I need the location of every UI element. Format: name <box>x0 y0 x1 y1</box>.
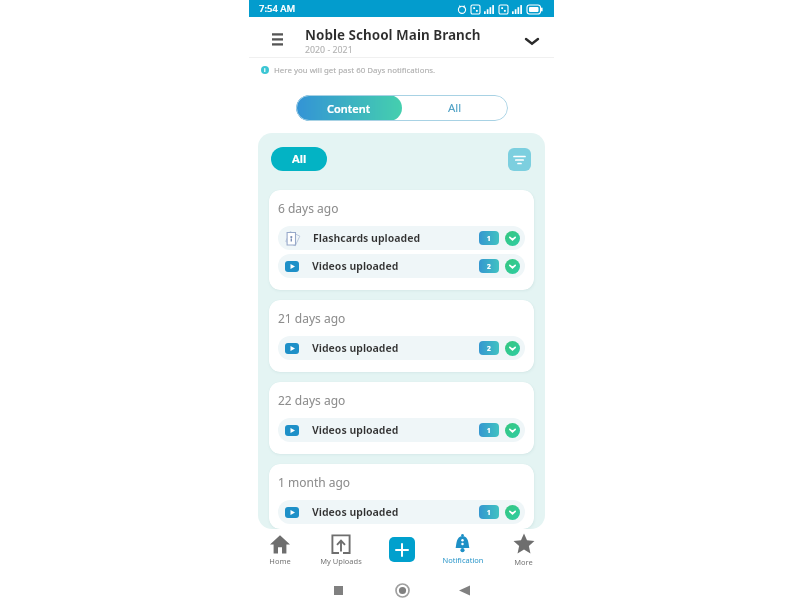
button[interactable]: Back <box>453 579 475 600</box>
button[interactable]: Videos uploaded <box>278 418 525 442</box>
button[interactable]: More <box>493 529 554 570</box>
staticText: 22 days ago <box>278 392 346 408</box>
button[interactable]: Filter <box>508 148 531 171</box>
staticText: Videos uploaded <box>312 505 399 519</box>
staticText: Noble School Main Branch <box>305 26 481 44</box>
button[interactable]: Videos uploaded <box>278 500 525 524</box>
button[interactable]: All <box>271 147 327 171</box>
staticText: i <box>264 67 266 74</box>
staticText: 6 days ago <box>278 200 339 216</box>
staticText: More <box>514 557 533 567</box>
staticText: 21 days ago <box>278 310 346 326</box>
staticText: Videos uploaded <box>312 259 399 273</box>
button[interactable]: Expand row <box>505 341 520 356</box>
button[interactable]: Add <box>389 537 415 562</box>
button[interactable]: Expand row <box>505 423 520 438</box>
button[interactable]: Menu <box>265 26 289 50</box>
staticText: 2 <box>487 262 491 271</box>
button[interactable]: Recents <box>327 579 349 600</box>
staticText: Content <box>327 101 371 116</box>
staticText: My Uploads <box>320 556 362 566</box>
staticText: 1 <box>487 426 491 435</box>
staticText: 1 <box>487 234 491 243</box>
button[interactable]: Flashcards uploaded <box>278 226 525 250</box>
staticText: All <box>448 100 462 116</box>
button[interactable]: Home <box>249 529 310 570</box>
button[interactable]: All <box>402 95 508 121</box>
staticText: Flashcards uploaded <box>313 231 421 245</box>
button[interactable]: My Uploads <box>310 529 371 570</box>
button[interactable]: Notification <box>432 529 493 570</box>
button[interactable]: Videos uploaded <box>278 336 525 360</box>
button[interactable]: Expand row <box>505 259 520 274</box>
button[interactable]: Videos uploaded <box>278 254 525 278</box>
button[interactable]: Home <box>391 579 413 600</box>
staticText: 1 month ago <box>278 474 351 490</box>
staticText: 2020 - 2021 <box>305 44 353 56</box>
staticText: 2 <box>487 344 491 353</box>
staticText: 7:54 AM <box>259 2 296 15</box>
staticText: Home <box>269 556 291 566</box>
button[interactable]: Expand row <box>505 505 520 520</box>
button[interactable]: Content <box>296 95 402 121</box>
staticText: 1 <box>487 508 491 517</box>
staticText: All <box>292 151 307 167</box>
button[interactable]: Expand row <box>505 231 520 246</box>
staticText: Videos uploaded <box>312 423 399 437</box>
button[interactable]: Expand <box>520 29 544 53</box>
staticText: Notification <box>442 555 484 565</box>
staticText: Here you will get past 60 Days notificat… <box>274 65 436 76</box>
staticText: Videos uploaded <box>312 341 399 355</box>
